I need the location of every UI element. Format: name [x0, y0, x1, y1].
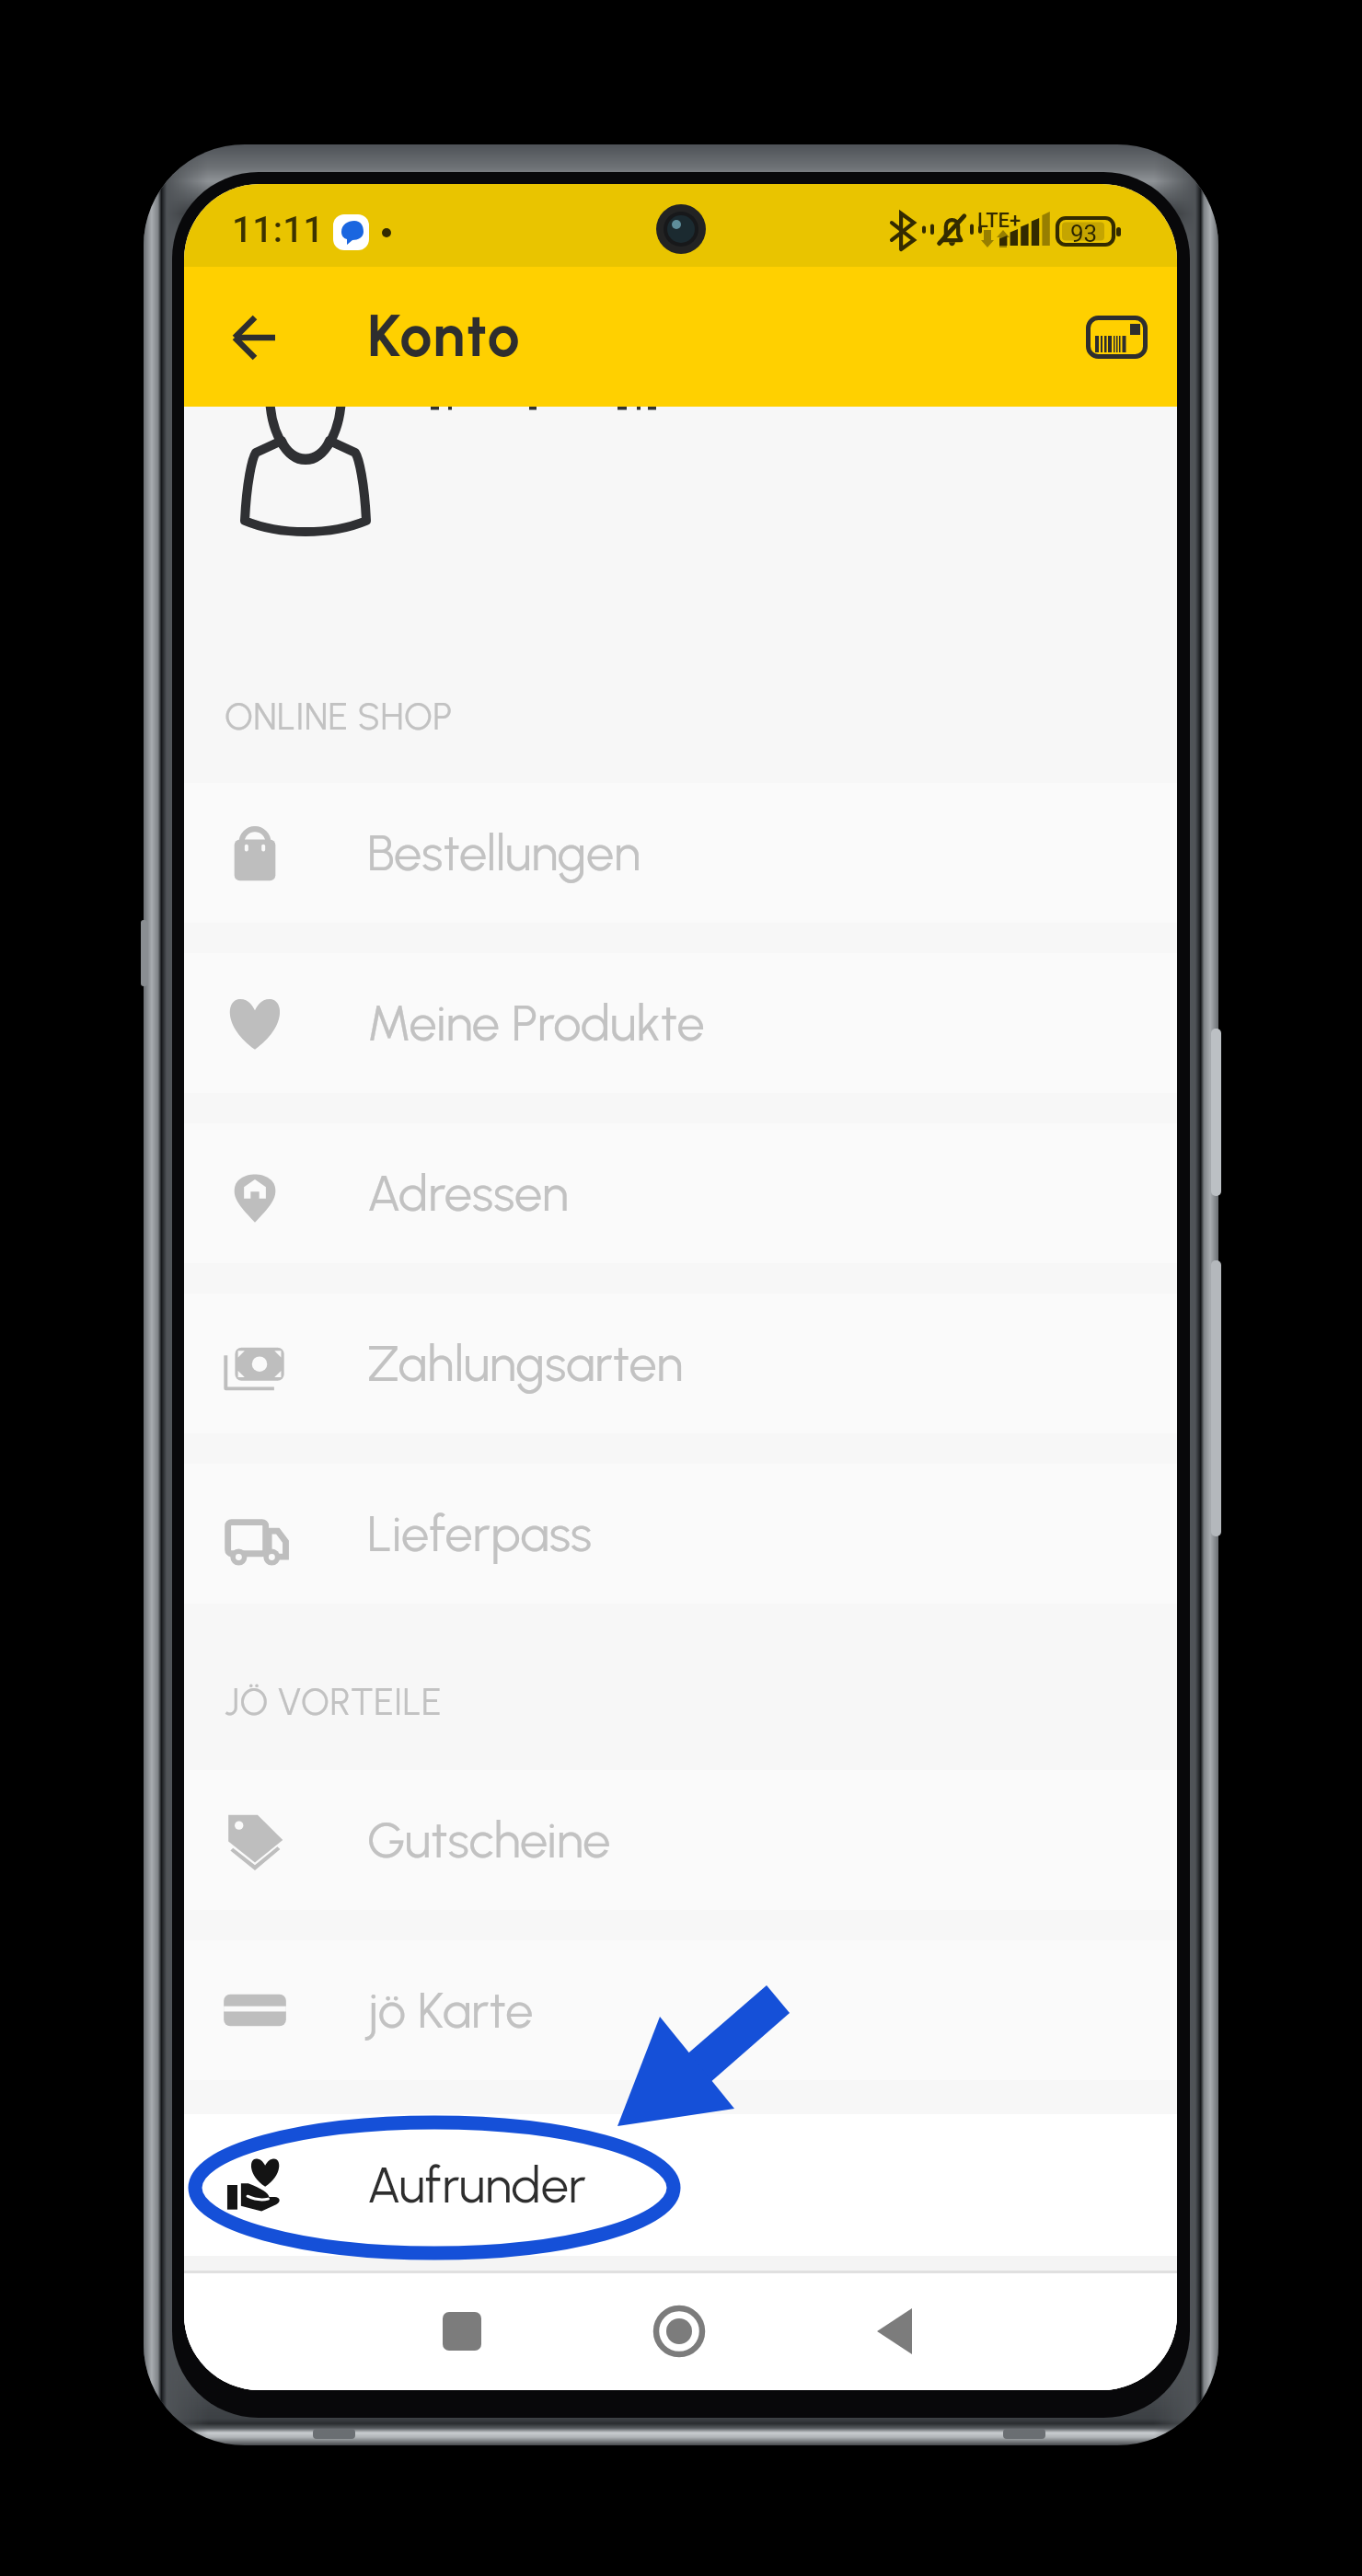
- button[interactable]: Home: [642, 2294, 716, 2368]
- button[interactable]: Meine Produkte: [184, 953, 1177, 1093]
- button[interactable]: Recent apps: [425, 2294, 499, 2368]
- button[interactable]: jö Karte: [184, 1940, 1177, 2080]
- button[interactable]: Lieferpass: [184, 1464, 1177, 1604]
- staticText: Zahlungsarten: [367, 1334, 684, 1394]
- staticText: Konto: [367, 301, 521, 371]
- button[interactable]: Aufrunder: [184, 2115, 1177, 2255]
- button[interactable]: Adressen: [184, 1123, 1177, 1263]
- staticText: Adressen: [367, 1164, 569, 1224]
- staticText: LTE+: [977, 209, 1021, 233]
- staticText: 11:11: [232, 209, 324, 251]
- staticText: Meine Produkte: [367, 994, 705, 1053]
- button[interactable]: Back: [209, 295, 294, 380]
- staticText: 93: [1070, 220, 1098, 247]
- button[interactable]: Zahlungsarten: [184, 1294, 1177, 1433]
- button[interactable]: Back: [860, 2294, 933, 2368]
- staticText: JÖ VORTEILE: [225, 1680, 442, 1724]
- staticText: Lieferpass: [367, 1504, 593, 1564]
- staticText: ONLINE SHOP: [225, 695, 453, 739]
- button[interactable]: Gutscheine: [184, 1770, 1177, 1910]
- button[interactable]: Show card barcode: [1068, 295, 1152, 380]
- staticText: Bestellungen: [367, 823, 641, 883]
- button[interactable]: Bestellungen: [184, 783, 1177, 923]
- staticText: jö Karte: [367, 1981, 534, 2041]
- staticText: Aufrunder: [367, 2156, 586, 2215]
- staticText: Gutscheine: [367, 1811, 611, 1870]
